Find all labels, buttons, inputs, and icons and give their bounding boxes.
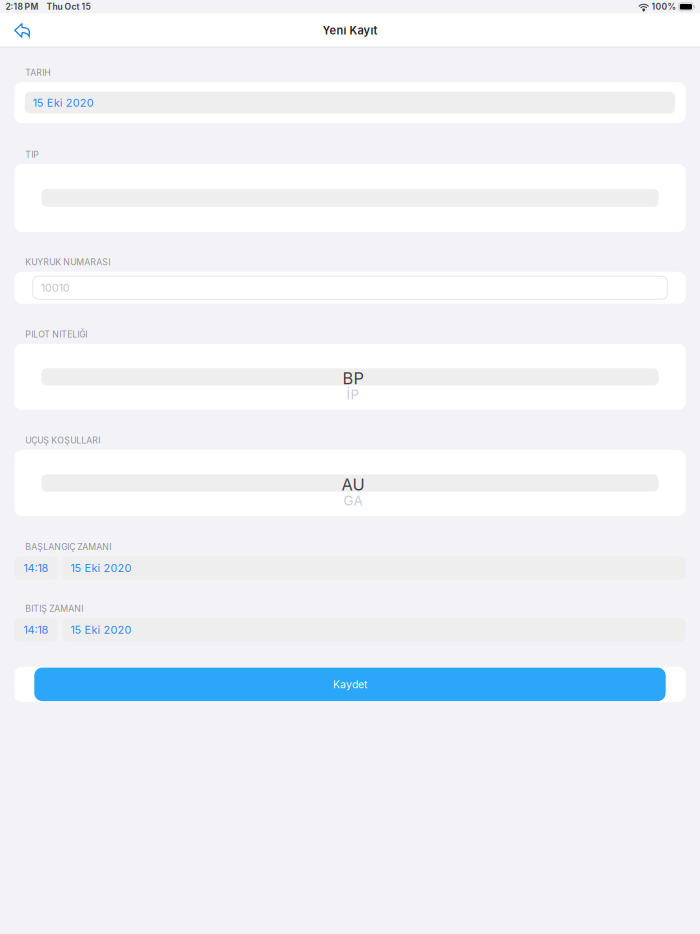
staticText: KUYRUK NUMARASI xyxy=(25,257,110,267)
staticText: BP xyxy=(342,368,363,388)
staticText: 100% xyxy=(651,2,676,12)
button[interactable]: 14:18 xyxy=(14,556,58,580)
staticText: Thu Oct 15 xyxy=(46,2,90,12)
staticText: 10010 xyxy=(41,281,70,294)
button[interactable]: 15 Eki 2020 xyxy=(62,618,686,641)
staticText: UÇUŞ KOŞULLARI xyxy=(25,435,100,445)
staticText: PILOT NITELIĞI xyxy=(25,329,87,339)
staticText: 15 Eki 2020 xyxy=(70,623,131,636)
staticText: İP xyxy=(346,386,359,403)
staticText: TARIH xyxy=(25,67,50,78)
button[interactable]: Kaydet xyxy=(34,668,666,701)
button[interactable]: 14:18 xyxy=(14,618,58,641)
staticText: 15 Eki 2020 xyxy=(33,96,94,109)
staticText: 2:18 PM xyxy=(5,2,38,12)
staticText: 14:18 xyxy=(24,561,49,575)
button[interactable]: 15 Eki 2020 xyxy=(25,92,675,114)
staticText: GA xyxy=(343,493,362,509)
staticText: TIP xyxy=(25,149,39,160)
staticText: 14:18 xyxy=(24,623,49,636)
staticText: BAŞLANGIÇ ZAMANI xyxy=(25,542,111,552)
staticText: 15 Eki 2020 xyxy=(70,561,131,575)
staticText: Kaydet xyxy=(333,678,367,691)
staticText: BITIŞ ZAMANI xyxy=(25,603,83,614)
button[interactable]: 10010 xyxy=(33,276,667,299)
button[interactable]: Back xyxy=(0,13,42,48)
staticText: Yeni Kayıt xyxy=(322,24,377,37)
staticText: AU xyxy=(341,474,364,494)
button[interactable]: 15 Eki 2020 xyxy=(62,556,686,580)
